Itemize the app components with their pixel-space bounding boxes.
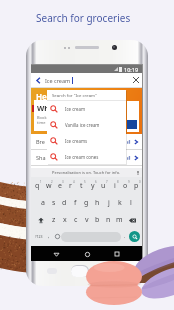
button[interactable]: j [103,196,114,210]
button[interactable]: Backspace [125,213,140,227]
staticText: h [95,198,100,208]
button[interactable]: q [32,179,43,193]
staticText: Search for "Ice cream" [52,92,97,98]
button[interactable]: Clear search [129,73,142,87]
button[interactable]: Vanilla ice cream [47,117,126,133]
staticText: 8 [117,180,119,184]
staticText: l [130,198,132,208]
staticText: w [46,181,52,191]
staticText: o [123,181,128,191]
staticText: x [63,215,67,225]
staticText: q [35,181,40,191]
staticText: Sha [36,154,46,161]
staticText: y [91,181,95,191]
button[interactable]: s [48,196,59,210]
button[interactable]: o [120,179,131,193]
button[interactable]: Search [129,231,140,242]
button[interactable]: t [76,179,87,193]
staticText: . [124,233,126,240]
button[interactable]: g [81,196,92,210]
staticText: u [101,181,106,191]
staticText: Ice cream cones [65,154,99,160]
staticText: k [118,198,122,208]
staticText: z [52,215,56,225]
button[interactable]: Recents [110,247,124,261]
staticText: g [84,198,89,208]
button[interactable]: f [70,196,81,210]
staticText: 10:19 [124,66,139,73]
button[interactable]: z [48,213,59,227]
button[interactable]: Bre [31,134,142,149]
staticText: 7 [106,180,108,184]
button[interactable]: b [92,213,103,227]
staticText: Why [37,103,54,113]
staticText: Ice creams [65,138,88,144]
staticText: Search for groceries [36,11,131,25]
button[interactable]: Back [31,73,45,87]
staticText: , [48,233,50,240]
staticText: r [69,181,72,191]
staticText: n [106,215,111,225]
staticText: ?123 [35,234,43,239]
staticText: 5 [84,180,86,184]
staticText: j [108,198,110,208]
button[interactable]: Ice cream cones [47,149,126,164]
button[interactable]: Back [49,247,63,261]
button[interactable]: u [98,179,109,193]
staticText: 1 [40,180,42,184]
button[interactable]: c [70,213,81,227]
button[interactable]: k [114,196,125,210]
staticText: Ice cream [45,77,71,84]
button[interactable]: Space [61,232,121,242]
button[interactable]: w [43,179,54,193]
button[interactable]: Q [31,166,142,181]
button[interactable]: r [65,179,76,193]
button[interactable]: m [114,213,125,227]
staticText: 2 [51,180,53,184]
staticText: e [58,181,62,191]
staticText: a [41,198,45,208]
button[interactable]: n [103,213,114,227]
button[interactable]: Emoji [53,230,61,243]
staticText: 9 [128,180,130,184]
staticText: 6 [95,180,97,184]
staticText: t [80,181,83,191]
button[interactable]: x [59,213,70,227]
staticText: v [85,215,89,225]
staticText: 4 [73,180,75,184]
staticText: Ice cream [65,106,86,112]
button[interactable]: , [45,230,53,243]
button[interactable]: a [37,196,48,210]
button[interactable]: ?123 [33,230,45,243]
staticText: Bre [36,138,45,145]
button[interactable]: d [59,196,70,210]
button[interactable]: y [87,179,98,193]
staticText: c [74,215,78,225]
button[interactable]: e [54,179,65,193]
staticText: Vanilla ice cream [65,122,100,128]
staticText: Book time [37,115,47,125]
button[interactable]: Ice cream [47,101,126,117]
button[interactable]: v [81,213,92,227]
button[interactable]: Ice creams [47,133,126,149]
button[interactable]: Home [80,247,94,261]
staticText: m [116,215,123,225]
staticText: s [52,198,56,208]
button[interactable]: Sha [31,150,142,165]
button[interactable]: . [121,230,129,243]
staticText: 3 [62,180,64,184]
staticText: b [95,215,100,225]
button[interactable]: l [125,196,136,210]
button[interactable]: h [92,196,103,210]
staticText: p [134,181,139,191]
staticText: d [62,198,67,208]
staticText: i [114,181,116,191]
staticText: Personalisation is on. Touch for info. [52,170,121,175]
staticText: f [74,198,77,208]
staticText: 0 [139,180,141,184]
button[interactable]: Shift [33,213,48,227]
button[interactable]: p [131,179,142,193]
button[interactable]: i [109,179,120,193]
staticText: Hello [36,91,57,102]
